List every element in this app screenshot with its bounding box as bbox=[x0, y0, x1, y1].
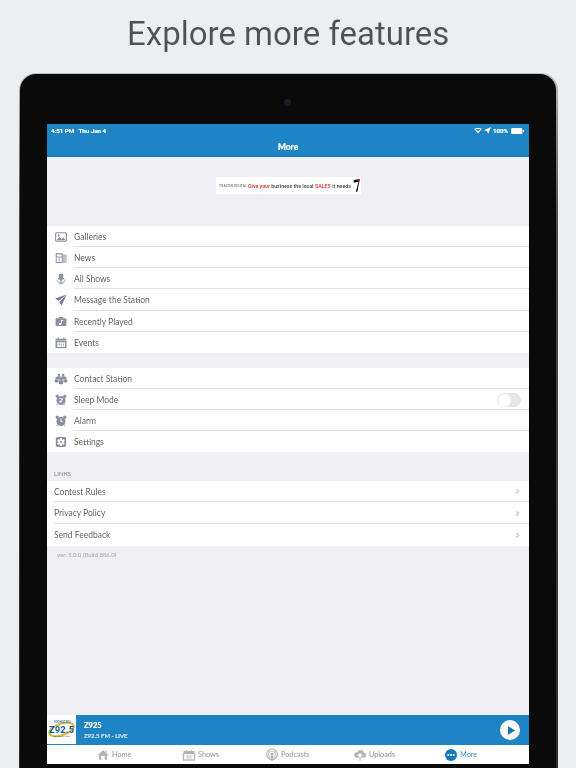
staticText: More bbox=[278, 142, 299, 152]
staticText: Galleries bbox=[74, 232, 107, 242]
button[interactable]: Sleep mode toggle bbox=[497, 393, 521, 407]
staticText: Shows bbox=[198, 750, 219, 759]
staticText: Privacy Policy bbox=[54, 508, 106, 518]
button[interactable]: Send Feedback bbox=[47, 524, 529, 546]
button[interactable]: Alarm bbox=[47, 410, 529, 431]
button[interactable]: Settings bbox=[47, 431, 529, 452]
staticText: HIT MUSIC NOW bbox=[54, 735, 71, 738]
staticText: Message the Station bbox=[74, 295, 150, 305]
button[interactable]: Privacy Policy bbox=[47, 502, 529, 524]
staticText: Z92.5 FM - LIVE bbox=[84, 732, 128, 739]
staticText: 100% bbox=[493, 127, 509, 134]
staticText: TRACON DIGITAL bbox=[219, 184, 247, 188]
staticText: Send Feedback bbox=[54, 530, 111, 540]
staticText: Home bbox=[112, 750, 132, 759]
staticText: Contact Station bbox=[74, 374, 133, 384]
button[interactable]: Uploads bbox=[331, 745, 418, 764]
button[interactable]: Contact Station bbox=[47, 368, 529, 389]
button[interactable]: More bbox=[418, 745, 505, 764]
staticText: Z92.5 bbox=[49, 724, 75, 735]
staticText: LINKS bbox=[54, 470, 72, 477]
button[interactable]: News bbox=[47, 247, 529, 268]
button[interactable]: Contest Rules bbox=[47, 481, 529, 502]
staticText: Alarm bbox=[74, 416, 97, 426]
staticText: Recently Played bbox=[74, 317, 133, 327]
staticText: business the local bbox=[270, 183, 315, 189]
staticText: Podcasts bbox=[281, 750, 310, 759]
button[interactable]: Events bbox=[47, 332, 529, 353]
staticText: Uploads bbox=[369, 750, 396, 759]
staticText: Contest Rules bbox=[54, 487, 106, 497]
button[interactable]: Message the Station bbox=[47, 289, 529, 311]
button[interactable]: All Shows bbox=[47, 268, 529, 289]
button[interactable]: Recently Played bbox=[47, 311, 529, 332]
staticText: More bbox=[460, 750, 478, 759]
staticText: ROCHESTER'S bbox=[54, 721, 71, 724]
staticText: Sleep Mode bbox=[74, 395, 119, 405]
button[interactable]: ROCHESTER'S bbox=[47, 715, 529, 745]
staticText: Events bbox=[74, 338, 99, 348]
button[interactable]: Podcasts bbox=[244, 745, 331, 764]
staticText: Explore more features bbox=[127, 14, 450, 53]
button[interactable]: Sleep Mode bbox=[47, 389, 529, 410]
staticText: Give your bbox=[248, 183, 270, 189]
button[interactable]: Advertisement bbox=[216, 177, 361, 194]
staticText: SALES bbox=[315, 183, 331, 189]
staticText: it needs bbox=[331, 183, 351, 189]
button[interactable]: Play bbox=[500, 720, 520, 740]
button[interactable]: Galleries bbox=[47, 226, 529, 247]
staticText: News bbox=[74, 253, 96, 263]
button[interactable]: Shows bbox=[157, 745, 244, 764]
button[interactable]: Home bbox=[71, 745, 157, 764]
staticText: 4:51 PM Thu Jun 4 bbox=[51, 127, 107, 134]
staticText: ver. 5.0.0 (Build 886.0) bbox=[57, 551, 117, 558]
staticText: All Shows bbox=[74, 274, 111, 284]
staticText: Z925 bbox=[84, 721, 102, 730]
staticText: Settings bbox=[74, 437, 104, 447]
